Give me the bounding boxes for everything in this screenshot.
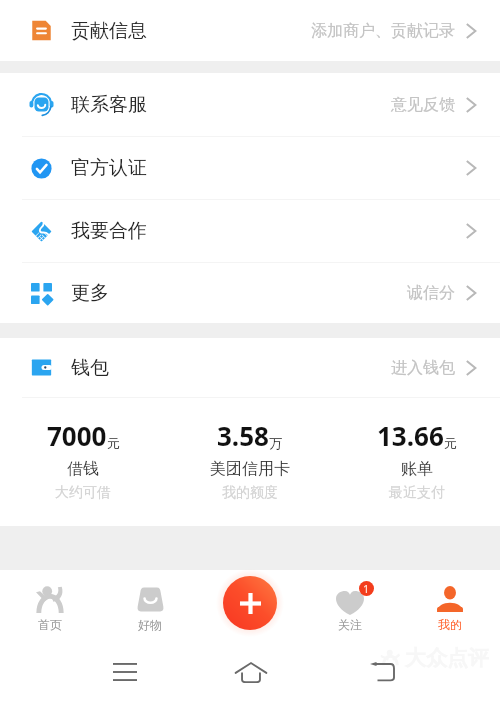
staticText: 我的 — [438, 617, 462, 632]
staticText: 7000 — [47, 418, 107, 453]
staticText: 更多 — [71, 281, 109, 305]
staticText: 账单 — [401, 459, 433, 479]
staticText: 大众点评 — [405, 645, 489, 671]
button[interactable]: Home — [229, 650, 273, 694]
button[interactable]: 我的 — [400, 570, 500, 642]
button[interactable]: 首页 — [0, 570, 100, 642]
staticText: 万 — [269, 435, 282, 451]
button[interactable]: 1 — [300, 570, 400, 642]
staticText: 美团信用卡 — [210, 459, 290, 479]
staticText: 贡献信息 — [71, 19, 147, 43]
staticText: 诚信分 — [407, 283, 455, 303]
button[interactable]: 联系客服 — [0, 73, 500, 136]
button[interactable]: Recents — [103, 650, 147, 694]
staticText: 联系客服 — [71, 93, 147, 117]
button[interactable]: 我要合作 — [0, 200, 500, 262]
staticText: 我的额度 — [222, 484, 278, 502]
button[interactable]: 3.58 — [166, 398, 333, 526]
staticText: 我要合作 — [71, 219, 147, 243]
staticText: 好物 — [138, 617, 162, 632]
button[interactable]: 更多 — [0, 263, 500, 323]
staticText: 3.58 — [217, 418, 269, 453]
staticText: 首页 — [38, 617, 62, 632]
staticText: 借钱 — [67, 459, 99, 479]
staticText: 元 — [444, 435, 457, 451]
staticText: 钱包 — [71, 356, 109, 380]
staticText: 进入钱包 — [391, 358, 455, 378]
staticText: 最近支付 — [389, 484, 445, 502]
staticText: 元 — [107, 435, 120, 451]
button[interactable]: Add — [223, 576, 277, 630]
staticText: 添加商户、贡献记录 — [311, 21, 455, 41]
staticText: 大约可借 — [55, 484, 111, 502]
staticText: 官方认证 — [71, 156, 147, 180]
button[interactable]: 官方认证 — [0, 137, 500, 199]
button[interactable]: 7000 — [0, 398, 166, 526]
button[interactable]: 13.66 — [333, 398, 500, 526]
staticText: 1 — [363, 581, 370, 596]
staticText: 意见反馈 — [391, 95, 455, 115]
button[interactable]: 好物 — [100, 570, 200, 642]
staticText: 关注 — [338, 617, 362, 632]
button[interactable]: Back — [360, 650, 404, 694]
button[interactable]: 贡献信息 — [0, 0, 500, 61]
button[interactable]: 钱包 — [0, 338, 500, 397]
staticText: 13.66 — [377, 418, 444, 453]
